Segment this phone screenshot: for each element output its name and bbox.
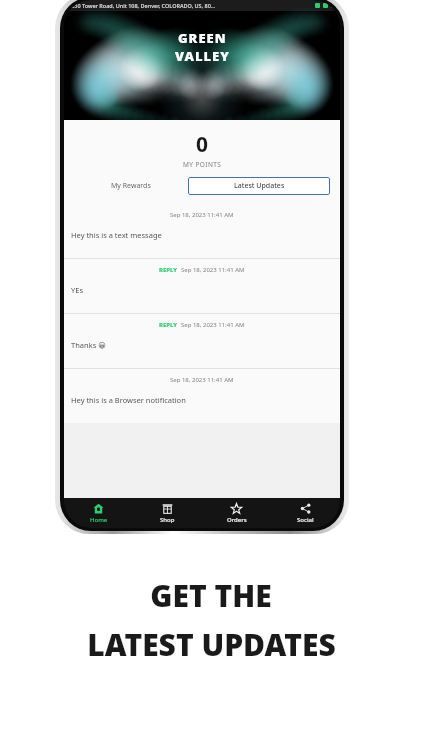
staticText: Latest Updates: [234, 181, 285, 191]
button[interactable]: Social: [271, 498, 340, 528]
staticText: Social: [297, 516, 314, 524]
staticText: Thanks 😀: [71, 340, 107, 350]
button[interactable]: Shop: [133, 498, 202, 528]
button[interactable]: REPLY: [64, 313, 340, 368]
staticText: Shop: [160, 516, 175, 524]
button[interactable]: My Rewards: [74, 177, 188, 195]
staticText: GREEN: [178, 29, 227, 47]
staticText: 0: [196, 130, 209, 159]
staticText: LATEST UPDATES: [87, 624, 336, 665]
button[interactable]: Home: [64, 498, 133, 528]
staticText: Home: [90, 516, 108, 524]
staticText: Sep 18, 2023 11:41 AM: [181, 266, 245, 274]
staticText: GET THE: [150, 575, 272, 616]
staticText: 4650 Tower Road, Unit 108, Denver, COLOR…: [68, 2, 216, 9]
staticText: REPLY: [159, 266, 177, 274]
staticText: Sep 18, 2023 11:41 AM: [181, 321, 245, 329]
staticText: Hey this is a text message: [71, 230, 162, 240]
staticText: Sep 18, 2023 11:41 AM: [170, 376, 234, 384]
button[interactable]: Sep 18, 2023 11:41 AM: [64, 368, 340, 423]
staticText: MY POINTS: [183, 160, 222, 169]
staticText: My Rewards: [111, 181, 151, 191]
button[interactable]: REPLY: [64, 258, 340, 313]
staticText: YEs: [71, 285, 84, 295]
staticText: REPLY: [159, 321, 177, 329]
staticText: Hey this is a Browser notification: [71, 395, 186, 405]
staticText: VALLEY: [175, 47, 230, 65]
staticText: Orders: [227, 516, 247, 524]
button[interactable]: Latest Updates: [188, 177, 330, 195]
button[interactable]: Sep 18, 2023 11:41 AM: [64, 204, 340, 258]
button[interactable]: Orders: [202, 498, 271, 528]
staticText: Sep 18, 2023 11:41 AM: [170, 211, 234, 219]
